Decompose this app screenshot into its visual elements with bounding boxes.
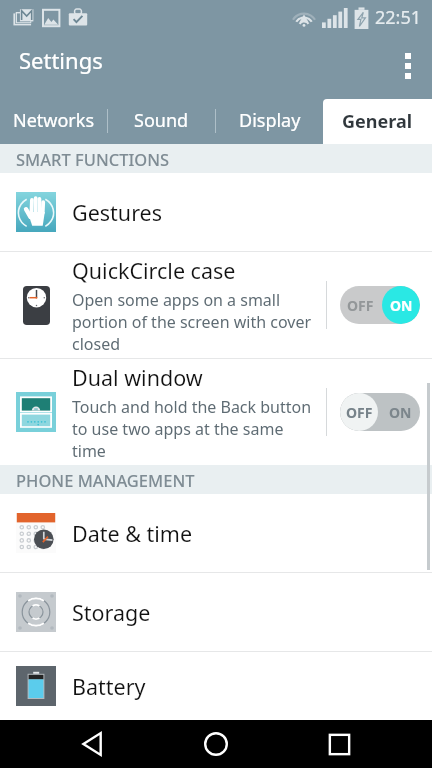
staticText: 22:51	[375, 5, 422, 30]
staticText: OFF	[346, 403, 373, 422]
button[interactable]: Sound	[108, 97, 215, 144]
staticText: OFF	[347, 296, 374, 315]
button[interactable]: Storage	[0, 573, 432, 651]
button[interactable]: Battery	[0, 652, 432, 720]
staticText: Display	[239, 108, 301, 133]
staticText: Settings	[19, 45, 103, 75]
button[interactable]: Date & time	[0, 494, 432, 572]
button[interactable]: Back	[63, 720, 123, 768]
staticText: Touch and hold the Back button to use tw…	[72, 396, 315, 462]
staticText: Dual window	[72, 363, 203, 392]
staticText: Storage	[72, 598, 151, 627]
staticText: Networks	[13, 108, 95, 133]
staticText: General	[342, 109, 413, 134]
button[interactable]: General	[323, 99, 432, 144]
button[interactable]: Dual window off	[340, 393, 420, 431]
staticText: Date & time	[72, 519, 193, 548]
button[interactable]: Display	[216, 97, 323, 144]
button[interactable]: QuickCircle case on	[340, 286, 420, 324]
staticText: PHONE MANAGEMENT	[16, 469, 195, 491]
button[interactable]: More options	[384, 42, 432, 90]
staticText: Sound	[134, 108, 189, 133]
staticText: QuickCircle case	[72, 256, 236, 285]
staticText: Open some apps on a small portion of the…	[72, 289, 315, 355]
staticText: SMART FUNCTIONS	[16, 148, 170, 170]
button[interactable]: Recent apps	[309, 720, 369, 768]
staticText: ON	[389, 403, 412, 422]
button[interactable]: Networks	[0, 97, 107, 144]
button[interactable]: Dual window	[0, 359, 432, 465]
button[interactable]: Home	[186, 720, 246, 768]
staticText: Battery	[72, 672, 146, 701]
button[interactable]: Gestures	[0, 173, 432, 251]
button[interactable]: QuickCircle case	[0, 252, 432, 358]
staticText: Gestures	[72, 198, 162, 227]
staticText: ON	[390, 296, 413, 315]
